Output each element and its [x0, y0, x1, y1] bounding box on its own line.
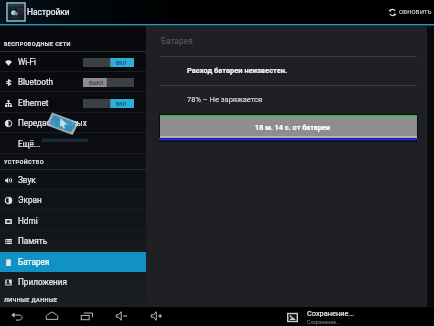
staticText: Hdmi: [18, 216, 38, 226]
staticText: Звук: [18, 175, 36, 185]
staticText: ВКЛ: [116, 60, 126, 66]
button[interactable]: Back: [0, 306, 34, 325]
button[interactable]: Ещё...: [0, 134, 146, 154]
button[interactable]: Передача данных: [0, 113, 146, 133]
button[interactable]: Volume up: [139, 306, 174, 325]
staticText: Батарея: [18, 257, 50, 267]
staticText: Сохранение...: [307, 319, 341, 325]
button[interactable]: ВКЛ: [83, 99, 134, 108]
button[interactable]: Батарея: [0, 252, 146, 272]
button[interactable]: ОБНОВИТЬ: [388, 8, 432, 17]
button[interactable]: 18 м. 14 с. от батареи: [159, 114, 418, 142]
staticText: Приложения: [18, 277, 67, 287]
staticText: Ethernet: [18, 98, 49, 108]
button[interactable]: Расход батареи неизвестен.: [146, 59, 434, 82]
button[interactable]: Settings app: [7, 3, 25, 21]
button[interactable]: Экран: [0, 190, 146, 210]
staticText: ЛИЧНЫЕ ДАННЫЕ: [4, 297, 58, 304]
staticText: Wi-Fi: [18, 57, 37, 67]
staticText: УСТРОЙСТВО: [4, 159, 44, 166]
button[interactable]: ВКЛ: [83, 58, 134, 67]
staticText: Настройки: [27, 7, 70, 17]
button[interactable]: Память: [0, 231, 146, 251]
staticText: Расход батареи неизвестен.: [187, 66, 288, 75]
button[interactable]: Hdmi: [0, 211, 146, 231]
button[interactable]: Bluetooth: [0, 72, 146, 92]
button[interactable]: ВЫКЛ: [83, 78, 134, 87]
button[interactable]: Сохранение...: [287, 309, 355, 325]
button[interactable]: Wi-Fi: [0, 52, 146, 72]
staticText: Ещё...: [18, 139, 41, 149]
staticText: ВКЛ: [116, 101, 126, 107]
button[interactable]: Ethernet: [0, 93, 146, 113]
staticText: Сохранение...: [307, 309, 355, 318]
button[interactable]: Home: [34, 306, 69, 325]
staticText: 18 м. 14 с. от батареи: [255, 123, 330, 132]
staticText: Батарея: [161, 36, 193, 46]
button[interactable]: Recents: [69, 306, 104, 325]
staticText: ОБНОВИТЬ: [399, 9, 432, 16]
staticText: Память: [18, 236, 48, 246]
button[interactable]: Звук: [0, 170, 146, 190]
button[interactable]: Volume down: [104, 306, 139, 325]
staticText: Передача данных: [18, 118, 87, 128]
staticText: БЕСПРОВОДНЫЕ СЕТИ: [4, 41, 71, 48]
staticText: 78% – Не заряжается: [187, 95, 263, 104]
staticText: Экран: [18, 195, 42, 205]
button[interactable]: Приложения: [0, 272, 146, 292]
staticText: Bluetooth: [18, 77, 54, 87]
staticText: ВЫКЛ: [89, 80, 104, 86]
